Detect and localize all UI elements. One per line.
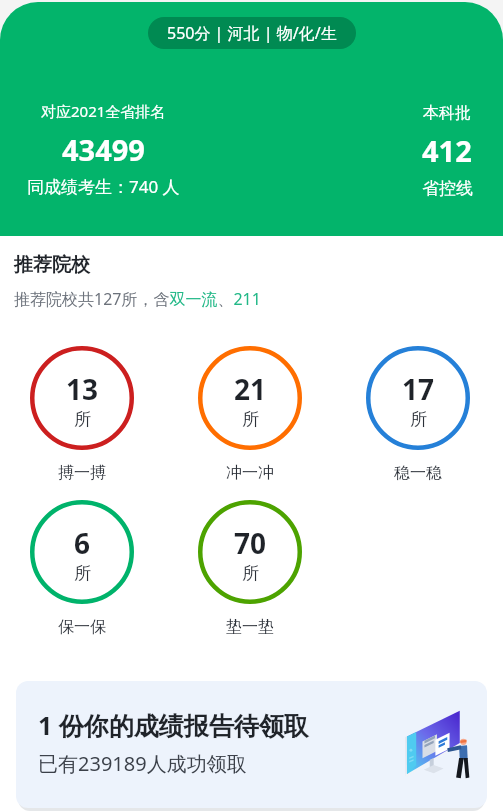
staticText: 垫一垫 [226, 617, 274, 637]
staticText: 13 [66, 370, 99, 408]
staticText: 省控线 [422, 178, 473, 199]
staticText: 搏一搏 [58, 463, 106, 483]
staticText: 550分 | 河北 | 物/化/生 [167, 22, 337, 44]
staticText: 同成绩考生：740 人 [27, 175, 180, 198]
staticText: 所 [242, 409, 259, 430]
staticText: 已有239189人成功领取 [38, 750, 247, 777]
button[interactable]: 17 [366, 346, 470, 483]
button[interactable]: 1 份你的成绩报告待领取 [16, 681, 487, 808]
button[interactable]: 550分 | 河北 | 物/化/生 [148, 17, 356, 49]
button[interactable]: 6 [30, 500, 134, 637]
staticText: 70 [234, 524, 267, 562]
staticText: 所 [74, 409, 91, 430]
other: 成绩报告插图 [404, 710, 470, 780]
staticText: 17 [402, 370, 435, 408]
staticText: 推荐院校共127所，含双一流、211 [14, 288, 261, 310]
button[interactable]: 70 [198, 500, 302, 637]
staticText: 保一保 [58, 617, 106, 637]
staticText: 所 [242, 563, 259, 584]
staticText: 1 份你的成绩报告待领取 [38, 708, 309, 742]
staticText: 对应2021全省排名 [41, 101, 166, 121]
staticText: 稳一稳 [394, 463, 442, 483]
staticText: 推荐院校 [14, 253, 90, 277]
staticText: 412 [422, 131, 472, 170]
staticText: 21 [234, 370, 267, 408]
staticText: 43499 [62, 130, 145, 169]
staticText: 6 [74, 524, 91, 562]
button[interactable]: 13 [30, 346, 134, 483]
button[interactable]: 21 [198, 346, 302, 483]
staticText: 本科批 [423, 103, 471, 123]
staticText: 所 [74, 563, 91, 584]
staticText: 冲一冲 [226, 463, 274, 483]
staticText: 所 [410, 409, 427, 430]
